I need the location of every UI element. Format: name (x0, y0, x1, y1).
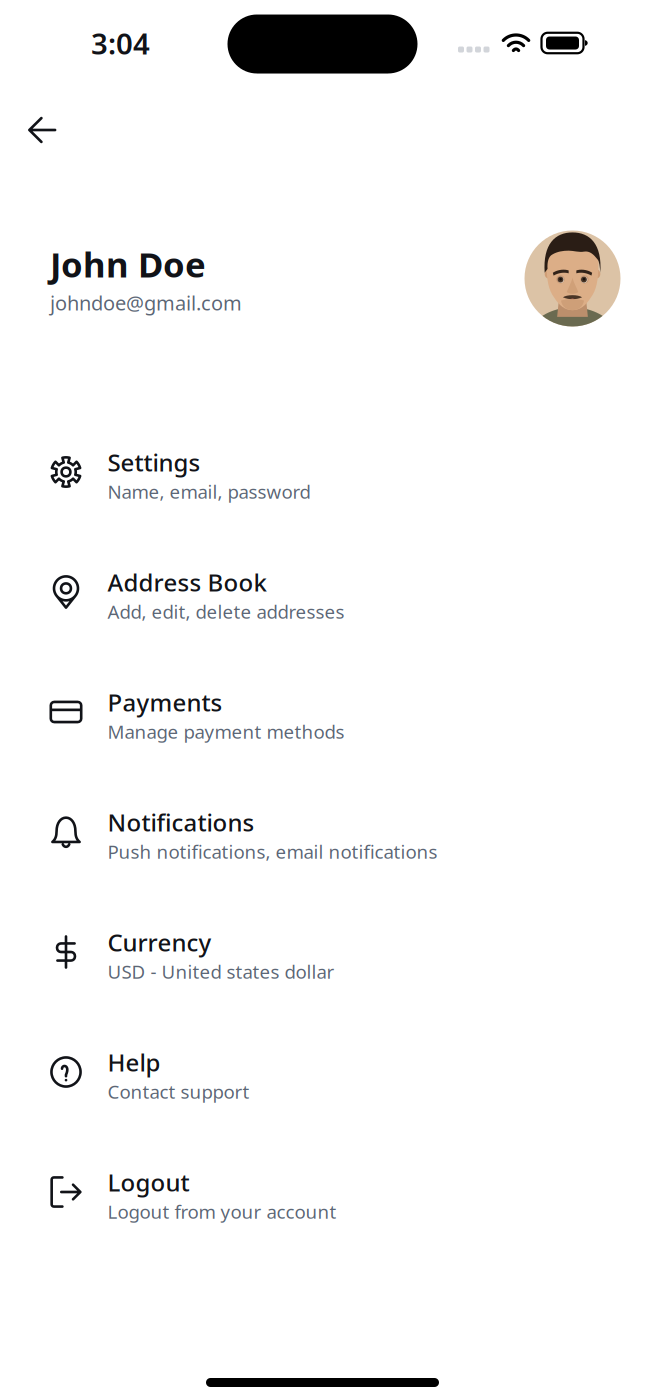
staticText: Push notifications, email notifications (107, 839, 437, 864)
button[interactable]: Notifications (0, 776, 645, 896)
staticText: Logout from your account (107, 1199, 336, 1224)
staticText: Add, edit, delete addresses (107, 599, 344, 624)
staticText: Currency (107, 926, 211, 958)
staticText: Manage payment methods (107, 719, 344, 744)
button[interactable]: Back (0, 104, 68, 156)
staticText: Notifications (107, 806, 254, 838)
staticText: John Doe (50, 241, 206, 287)
staticText: Help (107, 1046, 160, 1078)
button[interactable]: Address Book (0, 536, 645, 656)
staticText: Payments (107, 686, 222, 718)
button[interactable]: Payments (0, 656, 645, 776)
button[interactable]: Logout (0, 1136, 645, 1256)
staticText: Address Book (107, 566, 266, 598)
button[interactable]: Currency (0, 896, 645, 1016)
staticText: Logout (107, 1166, 189, 1198)
button[interactable]: Settings (0, 416, 645, 536)
staticText: Contact support (107, 1079, 249, 1104)
staticText: USD - United states dollar (107, 959, 334, 984)
staticText: Settings (107, 446, 200, 478)
staticText: 3:04 (91, 23, 150, 62)
staticText: johndoe@gmail.com (50, 289, 242, 316)
button[interactable]: Help (0, 1016, 645, 1136)
staticText: Name, email, password (107, 479, 310, 504)
